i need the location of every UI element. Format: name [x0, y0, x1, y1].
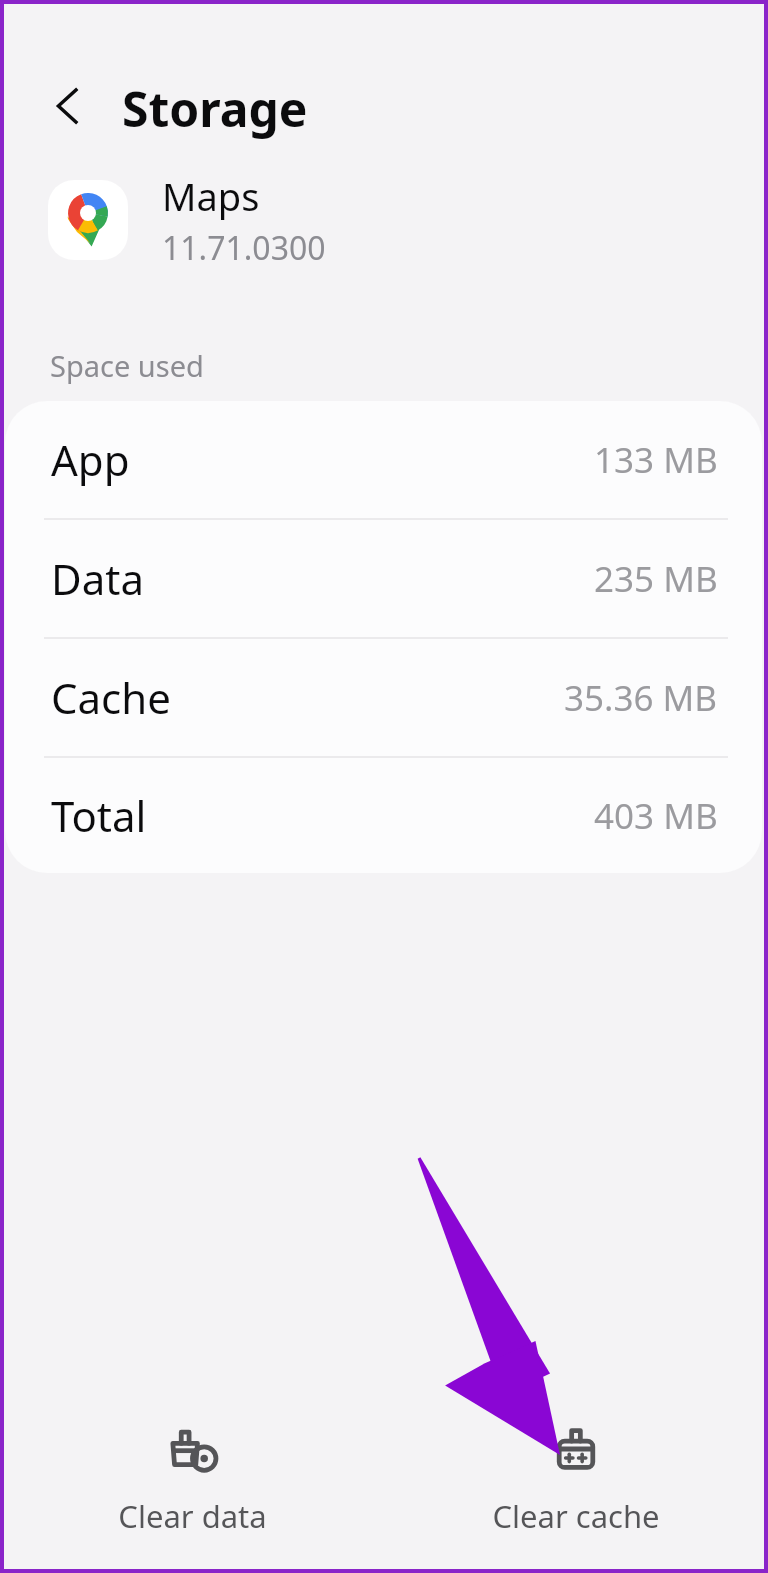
staticText: Cache	[51, 669, 171, 726]
staticText: Clear data	[118, 1495, 267, 1537]
button[interactable]: Total	[5, 758, 762, 873]
button[interactable]: Clear cache	[384, 1403, 768, 1553]
staticText: 403 MB	[594, 792, 718, 840]
staticText: App	[51, 431, 130, 488]
button[interactable]: Data	[5, 520, 762, 637]
staticText: Data	[51, 550, 144, 607]
staticText: 11.71.0300	[162, 226, 326, 270]
staticText: 235 MB	[594, 555, 718, 603]
staticText: Clear cache	[492, 1495, 660, 1537]
button[interactable]: Cache	[5, 639, 762, 756]
staticText: Storage	[122, 76, 308, 141]
button[interactable]: App	[5, 401, 762, 518]
staticText: Maps	[162, 170, 260, 222]
button[interactable]: Clear data	[0, 1403, 384, 1553]
button[interactable]: Back	[40, 78, 96, 134]
staticText: Total	[51, 787, 147, 844]
staticText: 133 MB	[594, 436, 718, 484]
staticText: 35.36 MB	[564, 674, 718, 722]
staticText: Space used	[50, 346, 204, 385]
